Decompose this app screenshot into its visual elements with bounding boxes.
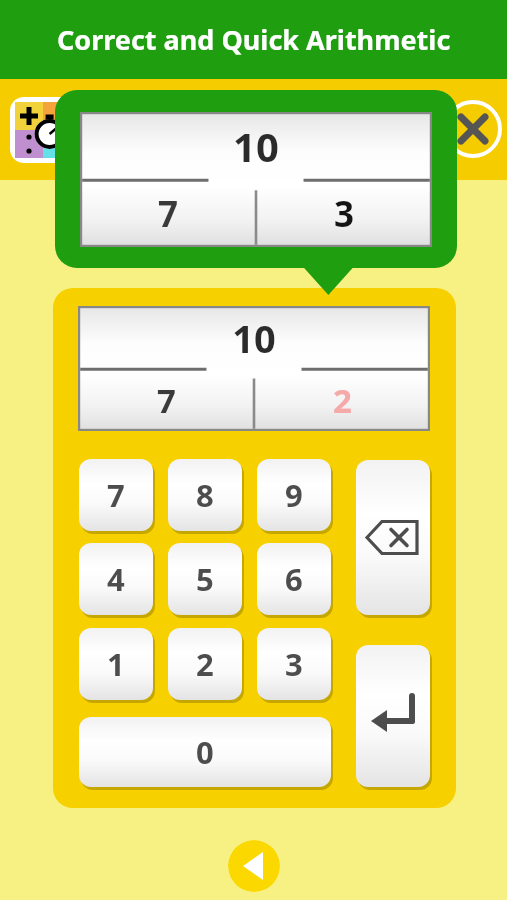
staticText: 3 bbox=[285, 643, 303, 685]
button[interactable]: Enter bbox=[356, 645, 430, 787]
button[interactable]: 5 bbox=[168, 543, 242, 615]
staticText: 9 bbox=[285, 474, 303, 516]
button[interactable]: 0 bbox=[79, 717, 331, 787]
staticText: 0 bbox=[196, 731, 214, 773]
button[interactable]: Backspace bbox=[356, 460, 430, 615]
staticText: 3 bbox=[334, 190, 355, 238]
staticText: 10 bbox=[233, 119, 279, 173]
staticText: Correct and Quick Arithmetic bbox=[57, 21, 451, 58]
button[interactable]: 1 bbox=[79, 628, 153, 700]
button[interactable]: App icon bbox=[10, 97, 76, 163]
button[interactable]: Close bbox=[443, 99, 503, 159]
staticText: 2 bbox=[333, 378, 352, 423]
staticText: 7 bbox=[107, 474, 125, 516]
button[interactable]: 4 bbox=[79, 543, 153, 615]
button[interactable]: 7 bbox=[79, 459, 153, 531]
button[interactable]: 6 bbox=[257, 543, 331, 615]
staticText: 7 bbox=[157, 378, 176, 423]
button[interactable]: Back bbox=[228, 840, 280, 892]
button[interactable]: 2 bbox=[168, 628, 242, 700]
button[interactable]: 9 bbox=[257, 459, 331, 531]
staticText: 10 bbox=[232, 312, 276, 364]
staticText: 6 bbox=[285, 558, 303, 600]
staticText: 2 bbox=[196, 643, 214, 685]
staticText: 8 bbox=[196, 474, 214, 516]
staticText: 4 bbox=[107, 558, 125, 600]
staticText: 1 bbox=[107, 643, 125, 685]
button[interactable]: 3 bbox=[257, 628, 331, 700]
staticText: 7 bbox=[158, 190, 179, 238]
staticText: 5 bbox=[196, 558, 214, 600]
button[interactable]: 8 bbox=[168, 459, 242, 531]
